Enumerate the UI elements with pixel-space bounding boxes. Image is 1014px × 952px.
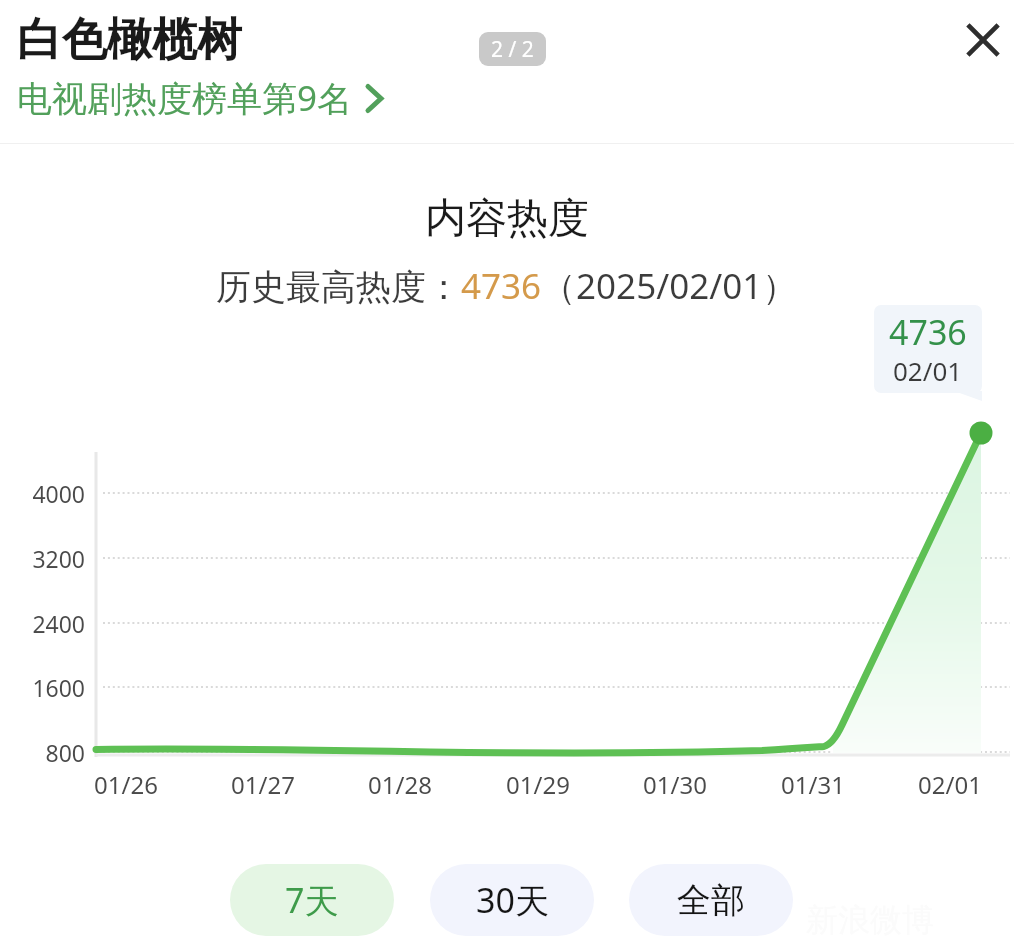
staticText: 3200: [32, 543, 85, 574]
button[interactable]: 7天: [230, 864, 394, 936]
button[interactable]: 全部: [629, 864, 793, 936]
staticText: 4000: [32, 478, 85, 509]
staticText: 4736: [889, 309, 967, 355]
staticText: 白色橄榄树: [17, 12, 242, 69]
button[interactable]: Close: [951, 8, 1014, 72]
staticText: 内容热度: [425, 193, 589, 245]
staticText: 01/26: [94, 768, 158, 800]
staticText: 7天: [285, 877, 339, 923]
staticText: 01/31: [781, 768, 845, 800]
staticText: 全部: [677, 879, 745, 922]
staticText: 1600: [32, 672, 85, 703]
staticText: 800: [45, 737, 85, 768]
staticText: 02/01: [893, 353, 963, 388]
button[interactable]: 30天: [430, 864, 594, 936]
staticText: 02/01: [918, 768, 982, 800]
button[interactable]: 电视剧热度榜单第9名: [17, 74, 386, 122]
staticText: 01/30: [643, 768, 707, 800]
staticText: 2 / 2: [491, 35, 534, 64]
staticText: 01/27: [231, 768, 295, 800]
staticText: 01/28: [368, 768, 432, 800]
staticText: 电视剧热度榜单第9名: [17, 74, 353, 122]
staticText: 01/29: [506, 768, 570, 800]
staticText: 历史最高热度：4736（2025/02/01）: [216, 262, 798, 310]
staticText: 2400: [32, 608, 85, 639]
staticText: 30天: [476, 877, 549, 923]
